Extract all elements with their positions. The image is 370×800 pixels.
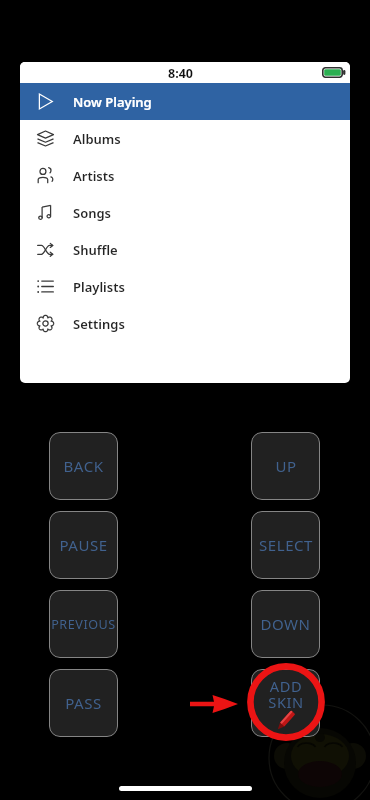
staticText: 8:40 [168,65,193,82]
other: Battery [322,67,346,78]
button[interactable]: ADD SKIN [251,669,320,737]
button[interactable]: DOWN [251,590,320,658]
button[interactable]: UP [251,432,320,500]
staticText: Shuffle [73,241,118,259]
staticText: PREVIOUS [51,616,116,633]
staticText: Artists [73,167,115,185]
staticText: SELECT [259,535,313,555]
button[interactable]: Shuffle [20,231,350,268]
button[interactable]: PREVIOUS [49,590,118,658]
staticText: Settings [73,315,125,333]
staticText: UP [275,456,297,476]
staticText: DOWN [260,614,311,634]
button[interactable]: BACK [49,432,118,500]
staticText: PASS [65,693,102,713]
button[interactable]: SELECT [251,511,320,579]
button[interactable]: Playlists [20,268,350,305]
staticText: BACK [63,456,104,476]
button[interactable]: Songs [20,194,350,231]
button[interactable]: Artists [20,157,350,194]
staticText: ADD SKIN [268,676,304,712]
staticText: PAUSE [59,535,108,555]
button[interactable]: Now Playing [20,83,350,120]
staticText: Playlists [73,278,125,296]
staticText: Songs [73,204,112,222]
button[interactable]: PASS [49,669,118,737]
staticText: Albums [73,130,121,148]
button[interactable]: Albums [20,120,350,157]
staticText: Now Playing [73,93,152,111]
button[interactable]: Settings [20,305,350,342]
button[interactable]: PAUSE [49,511,118,579]
